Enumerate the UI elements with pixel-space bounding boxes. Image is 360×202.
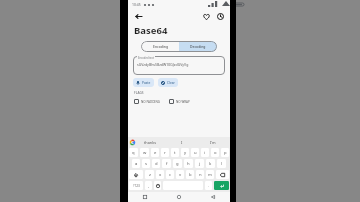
button[interactable]: c	[166, 170, 174, 179]
button[interactable]: NO WRAP	[168, 98, 191, 105]
staticText: Base64	[134, 24, 168, 37]
button[interactable]: Decoding	[179, 41, 217, 52]
staticText: m	[208, 172, 212, 178]
staticText: k	[209, 161, 212, 167]
button[interactable]: Clear	[158, 78, 178, 87]
staticText: thanks	[144, 140, 157, 145]
button[interactable]: Home	[162, 192, 196, 202]
button[interactable]: d	[152, 159, 160, 168]
staticText: FLAGS	[134, 91, 144, 95]
button[interactable]: Paste	[133, 78, 154, 87]
button[interactable]: k	[206, 159, 215, 168]
button[interactable]: m	[206, 170, 214, 179]
button[interactable]: Favorite	[201, 11, 211, 21]
staticText: u	[194, 150, 197, 156]
staticText: h	[187, 161, 190, 167]
button[interactable]: a	[132, 159, 140, 168]
button[interactable]: thanks	[135, 137, 166, 147]
staticText: Decoding	[190, 44, 206, 49]
staticText: ?123	[133, 184, 140, 188]
button[interactable]: j	[195, 159, 204, 168]
button[interactable]: l	[217, 159, 226, 168]
button[interactable]: b	[186, 170, 194, 179]
staticText: ,	[148, 183, 150, 188]
button[interactable]: w	[140, 148, 149, 157]
button[interactable]: Google	[130, 140, 135, 145]
button[interactable]: f	[162, 159, 171, 168]
button[interactable]: i	[201, 148, 209, 157]
staticText: n	[199, 172, 202, 178]
staticText: w	[143, 150, 147, 156]
button[interactable]: Back	[133, 11, 143, 21]
button[interactable]: ?123	[129, 181, 143, 190]
button[interactable]: History	[215, 11, 225, 21]
button[interactable]: e	[151, 148, 159, 157]
button[interactable]: Backspace	[216, 170, 229, 179]
button[interactable]: y	[181, 148, 189, 157]
button[interactable]: Back	[196, 192, 230, 202]
staticText: d	[155, 161, 158, 167]
staticText: 10:45	[132, 2, 141, 7]
staticText: z	[149, 172, 151, 178]
button[interactable]: h	[184, 159, 193, 168]
staticText: p	[224, 150, 227, 156]
staticText: sGVzdyBhsSBzdW1lIGJzdGVyVg	[137, 62, 189, 67]
staticText: c	[169, 172, 172, 178]
button[interactable]: s	[142, 159, 150, 168]
staticText: .	[208, 183, 210, 188]
staticText: i	[204, 150, 206, 156]
staticText: r	[164, 150, 166, 156]
staticText: NO WRAP	[176, 100, 190, 104]
staticText: Encoded text	[138, 56, 154, 60]
staticText: t	[174, 150, 176, 156]
staticText: l	[221, 161, 223, 167]
button[interactable]: u	[191, 148, 199, 157]
button[interactable]: .	[205, 181, 212, 190]
button[interactable]: I	[166, 137, 197, 147]
button[interactable]: Emoji	[154, 181, 161, 190]
button[interactable]: n	[196, 170, 204, 179]
button[interactable]: q	[129, 148, 138, 157]
staticText: y	[184, 150, 187, 156]
button[interactable]: I'm	[197, 137, 228, 147]
staticText: j	[199, 161, 201, 167]
staticText: x	[159, 172, 162, 178]
button[interactable]: z	[145, 170, 154, 179]
button[interactable]: Encoding	[141, 41, 179, 52]
staticText: f	[166, 161, 168, 167]
staticText: o	[214, 150, 217, 156]
button[interactable]: x	[156, 170, 164, 179]
staticText: e	[154, 150, 157, 156]
staticText: Encoding	[153, 44, 168, 49]
button[interactable]: r	[161, 148, 169, 157]
staticText: a	[135, 161, 138, 167]
staticText: I'm	[210, 140, 216, 145]
staticText: s	[145, 161, 148, 167]
staticText: I	[181, 140, 183, 145]
button[interactable]: o	[211, 148, 219, 157]
staticText: Clear	[167, 81, 175, 85]
button[interactable]: t	[171, 148, 179, 157]
button[interactable]: NO PADDING	[133, 98, 161, 105]
button[interactable]: ,	[145, 181, 152, 190]
button[interactable]: Shift	[129, 170, 143, 179]
button[interactable]: Recents	[128, 192, 162, 202]
staticText: v	[179, 172, 182, 178]
button[interactable]: Enter	[214, 181, 229, 190]
button[interactable]: sGVzdyBhsSBzdW1lIGJzdGVyVg	[133, 56, 225, 75]
staticText: q	[132, 150, 135, 156]
staticText: Paste	[142, 81, 151, 85]
button[interactable]: g	[173, 159, 182, 168]
button[interactable]: v	[176, 170, 184, 179]
staticText: g	[176, 161, 179, 167]
staticText: NO PADDING	[141, 100, 160, 104]
button[interactable]: p	[221, 148, 229, 157]
staticText: b	[189, 172, 192, 178]
